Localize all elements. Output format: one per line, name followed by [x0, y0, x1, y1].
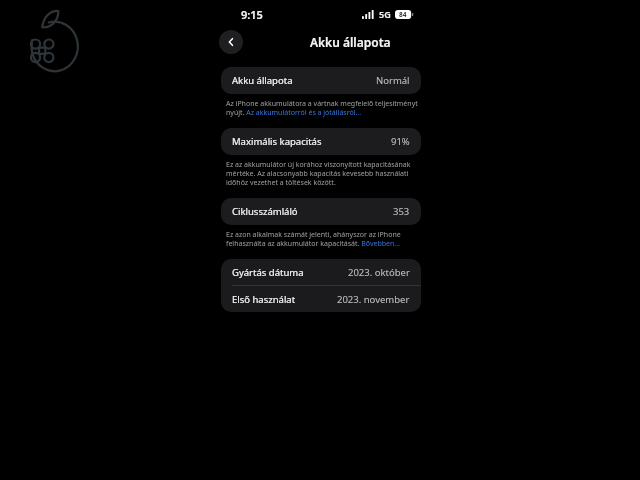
staticText: Maximális kapacitás [232, 135, 322, 148]
staticText: 91% [391, 135, 410, 148]
button[interactable]: Maximális kapacitás [221, 128, 421, 155]
staticText: Akku állapota [310, 34, 391, 50]
staticText: 9:15 [241, 7, 263, 22]
staticText: Az iPhone akkumulátora a vártnak megfele… [226, 99, 419, 117]
staticText: 2023. november [337, 293, 410, 306]
staticText: 2023. október [348, 266, 410, 279]
staticText: 5G [379, 8, 391, 20]
button[interactable]: Gyártás dátuma [221, 259, 421, 285]
button[interactable]: Back [219, 30, 243, 54]
staticText: Akku állapota [232, 74, 293, 87]
staticText: Gyártás dátuma [232, 266, 304, 279]
button[interactable]: Első használat [221, 286, 421, 312]
staticText: 84 [399, 10, 407, 19]
button[interactable]: Ciklusszámláló [221, 198, 421, 225]
button[interactable]: Akku állapota [221, 67, 421, 94]
staticText: Első használat [232, 293, 296, 306]
staticText: Ez az akkumulátor új korához viszonyítot… [226, 160, 419, 187]
staticText: Ciklusszámláló [232, 205, 298, 218]
staticText: Ez azon alkalmak számát jelenti, ahánysz… [226, 230, 419, 248]
staticText: 353 [393, 205, 410, 218]
staticText: Normál [376, 74, 410, 87]
